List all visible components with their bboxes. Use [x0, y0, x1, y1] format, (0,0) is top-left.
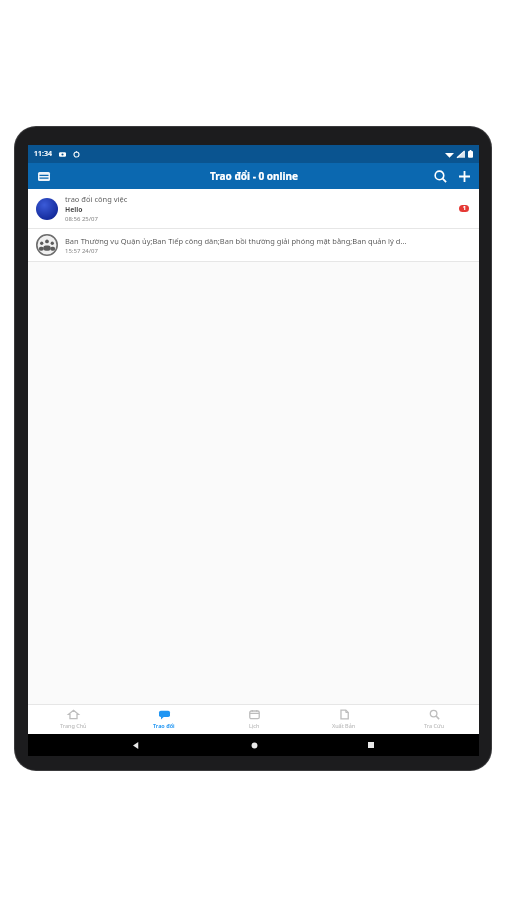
button[interactable]: Back: [127, 736, 145, 754]
staticText: Lịch: [249, 722, 260, 729]
staticText: Trao đổi: [153, 722, 175, 729]
button[interactable]: Search: [429, 165, 451, 187]
button[interactable]: Tra Cứu: [389, 704, 479, 734]
button[interactable]: Home: [245, 736, 263, 754]
staticText: Ban Thường vụ Quận ủy;Ban Tiếp công dân;…: [65, 236, 407, 246]
staticText: Hello: [65, 205, 83, 214]
button[interactable]: Add: [453, 165, 475, 187]
staticText: Tra Cứu: [424, 722, 445, 729]
button[interactable]: Xuất Bản: [299, 704, 389, 734]
staticText: 15:57 24/07: [65, 247, 98, 255]
staticText: trao đổi công việc: [65, 194, 128, 204]
button[interactable]: Menu: [34, 166, 54, 186]
staticText: Trao đổi - 0 online: [210, 169, 298, 183]
button[interactable]: Trao đổi: [119, 704, 209, 734]
button[interactable]: Recent apps: [362, 736, 380, 754]
button[interactable]: trao đổi công việc: [28, 189, 479, 229]
staticText: 11:34: [34, 149, 52, 159]
staticText: Trang Chủ: [60, 722, 87, 729]
staticText: 1: [463, 205, 466, 212]
button[interactable]: Ban Thường vụ Quận ủy;Ban Tiếp công dân;…: [28, 229, 479, 262]
button[interactable]: Trang Chủ: [28, 704, 119, 734]
button[interactable]: Lịch: [209, 704, 299, 734]
staticText: Xuất Bản: [332, 722, 356, 729]
staticText: 08:56 25/07: [65, 215, 98, 223]
